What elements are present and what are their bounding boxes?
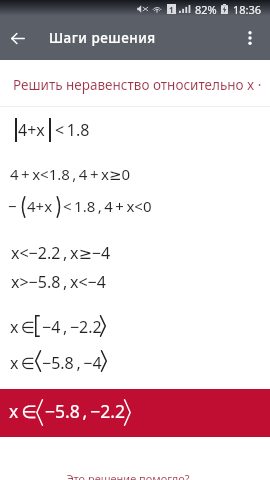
staticText: 4+x <box>27 196 53 216</box>
staticText: Решить неравенство относительно x · <box>13 76 262 94</box>
staticText: < 1.8 <box>55 119 90 141</box>
staticText: Это решение помогло? <box>0 471 263 480</box>
staticText: 18:36 <box>233 2 262 17</box>
staticText: −5.8 , −4 <box>42 352 102 374</box>
staticText: 82% <box>195 2 217 17</box>
staticText: x ∈ <box>9 399 37 423</box>
staticText: x ∈ <box>10 352 36 374</box>
staticText: x>−5.8 , x<−4 <box>11 271 106 293</box>
staticText: 4 + x<1.8 , 4 + x≥0 <box>10 164 131 184</box>
staticText: −4 , −2.2 <box>42 316 102 338</box>
staticText: 1 <box>169 4 174 14</box>
staticText: Шаги решения <box>49 29 156 47</box>
button[interactable]: More options <box>234 16 266 60</box>
staticText: −5.8 , −2.2 <box>45 399 125 423</box>
button[interactable]: Back <box>0 16 36 60</box>
staticText: − <box>8 196 17 216</box>
staticText: < 1.8 , 4 + x<0 <box>63 196 152 216</box>
staticText: x ∈ <box>10 316 36 338</box>
button[interactable]: x ∈ <box>0 389 270 437</box>
staticText: x<−2.2 , x≥−4 <box>11 242 111 264</box>
staticText: 4+x <box>18 119 45 141</box>
